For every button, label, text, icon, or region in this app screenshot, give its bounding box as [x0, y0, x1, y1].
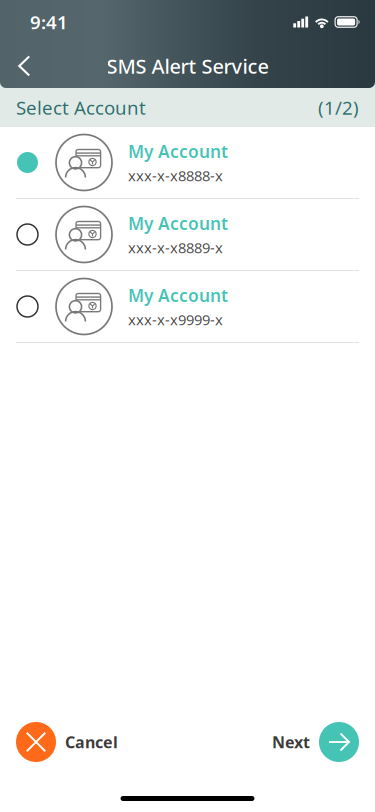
staticText: Select Account — [16, 95, 146, 120]
staticText: 9:41 — [30, 10, 68, 34]
staticText: My Account — [128, 212, 228, 235]
button[interactable]: Back — [0, 45, 44, 87]
staticText: My Account — [128, 140, 228, 163]
staticText: (1/2) — [318, 95, 359, 120]
staticText: xxx-x-x9999-x — [128, 310, 223, 329]
staticText: My Account — [128, 284, 228, 307]
staticText: SMS Alert Service — [106, 53, 268, 79]
button[interactable]: My Account — [0, 127, 375, 199]
staticText: Cancel — [65, 731, 118, 753]
button[interactable]: Cancel — [0, 722, 118, 762]
button[interactable]: My Account — [0, 199, 375, 271]
staticText: Next — [272, 731, 310, 753]
button[interactable]: Next — [272, 722, 375, 762]
staticText: xxx-x-x8889-x — [128, 238, 223, 257]
button[interactable]: My Account — [0, 271, 375, 343]
staticText: xxx-x-x8888-x — [128, 166, 223, 185]
